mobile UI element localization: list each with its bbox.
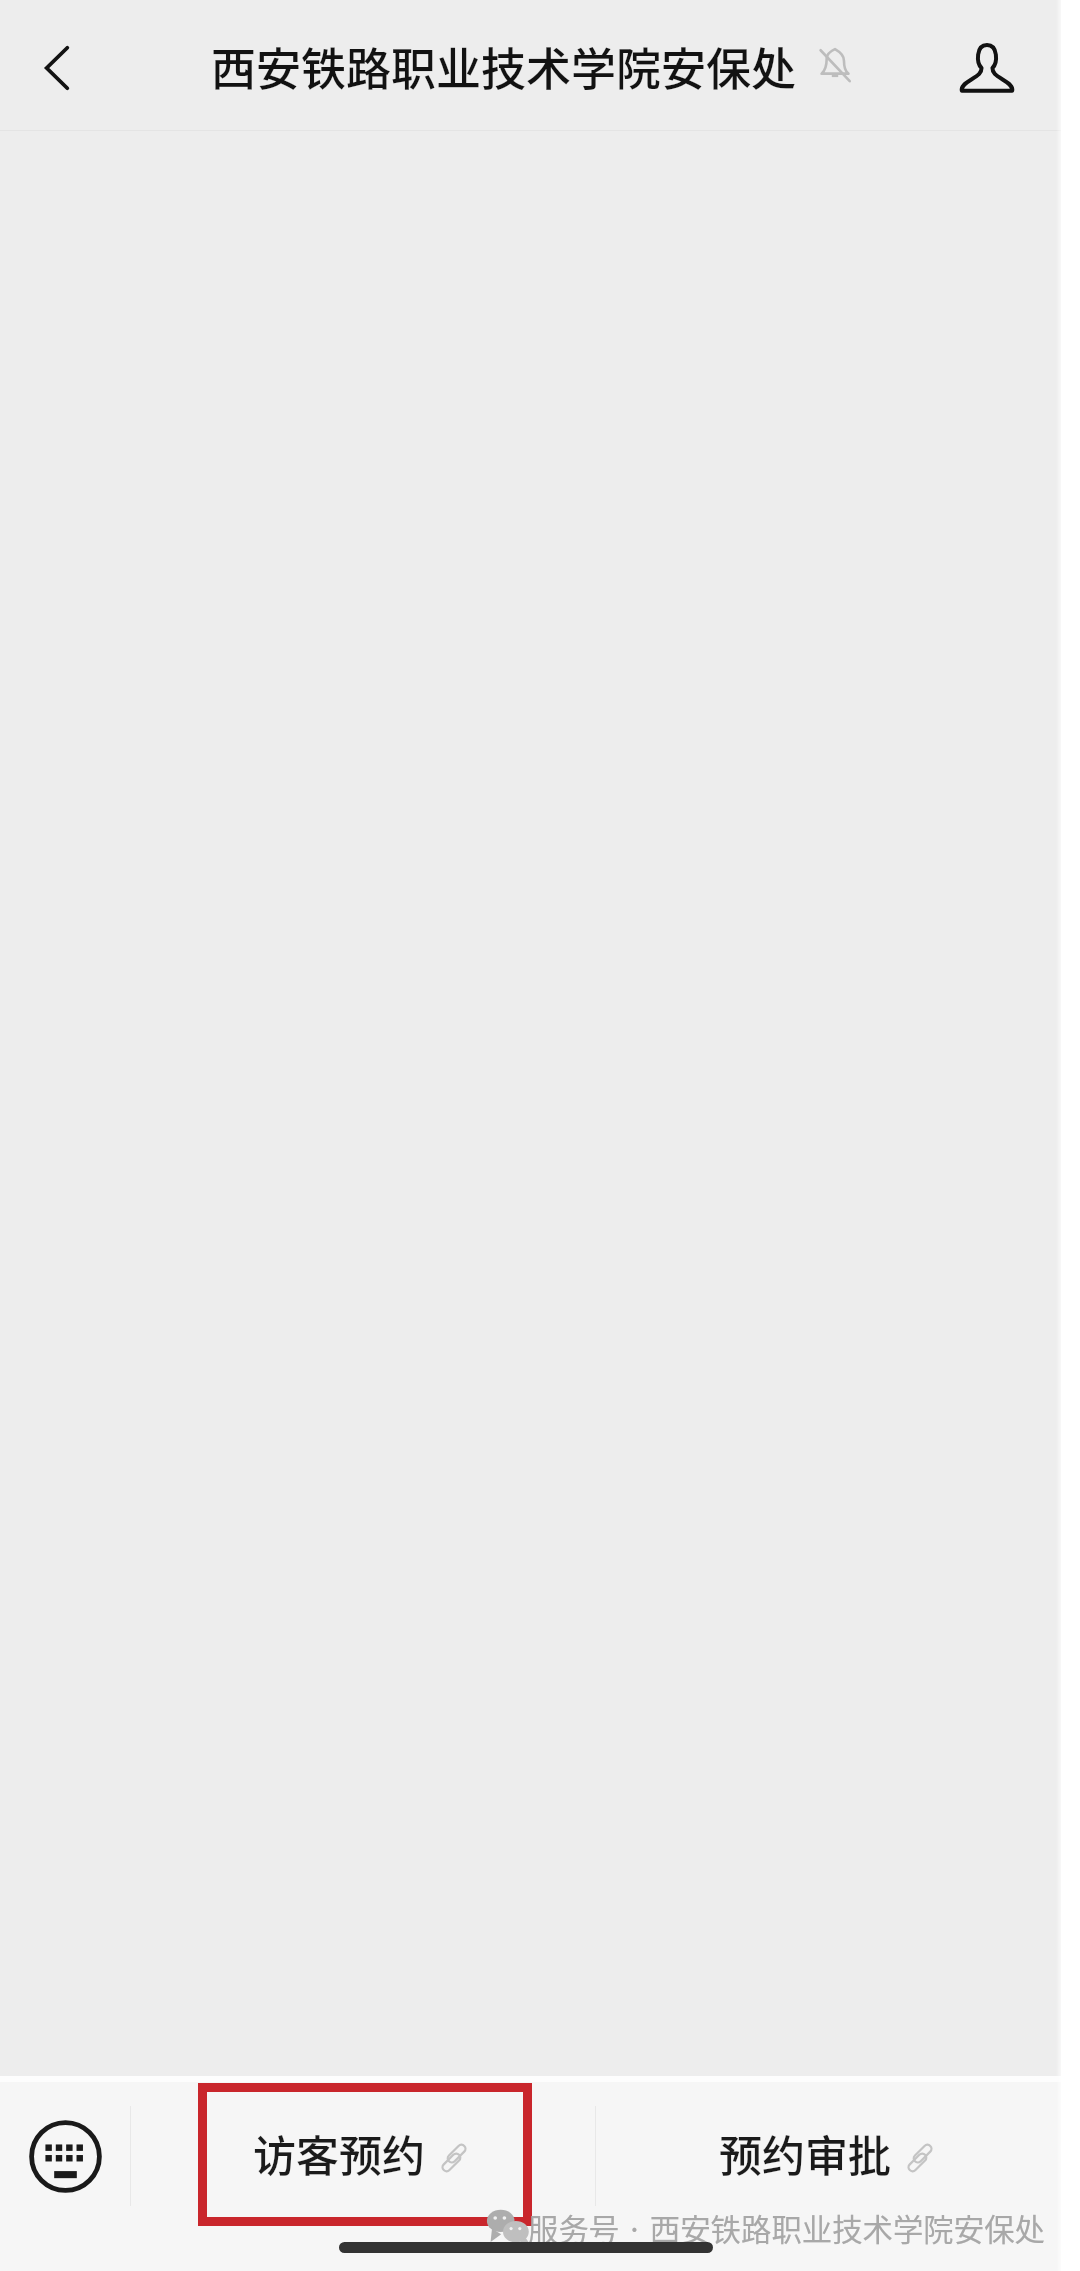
staticText: 服务号 · 西安铁路职业技术学院安保处 [528,2206,1045,2250]
button[interactable]: 访客预约 [131,2076,595,2236]
button[interactable]: Profile [937,18,1037,118]
button[interactable]: 预约审批 [596,2076,1061,2236]
button[interactable]: Keyboard [0,2076,130,2236]
staticText: 预约审批 [719,2122,891,2184]
staticText: 访客预约 [253,2122,425,2184]
staticText: 西安铁路职业技术学院安保处 [211,34,797,99]
button[interactable]: Back [7,18,107,118]
